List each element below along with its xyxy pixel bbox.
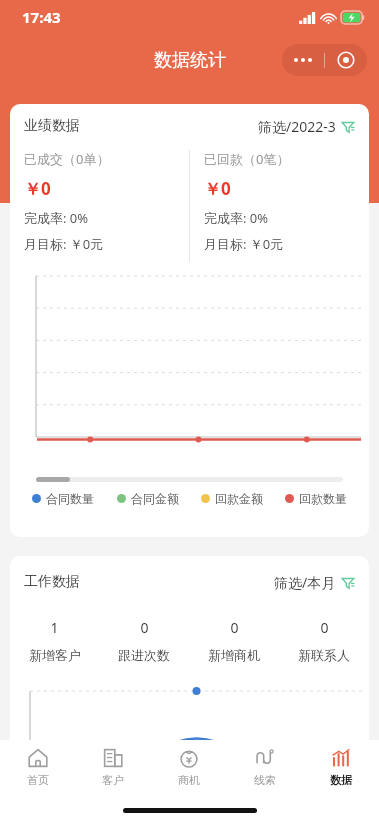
button[interactable]: 0	[99, 618, 189, 663]
staticText: ￥0	[204, 177, 231, 200]
button[interactable]: 1	[10, 618, 99, 663]
staticText: 筛选/2022-3	[258, 117, 336, 136]
staticText: ￥0	[24, 177, 51, 200]
staticText: 月目标: ￥0元	[204, 235, 284, 253]
staticText: 新联系人	[298, 647, 350, 663]
button[interactable]: 0	[189, 618, 279, 663]
staticText: 17:43	[22, 7, 61, 27]
staticText: 回款金额	[215, 491, 263, 506]
button[interactable]: 业绩数据	[10, 104, 369, 537]
staticText: 0	[230, 618, 239, 637]
staticText: 完成率: 0%	[204, 209, 269, 227]
staticText: 回款数量	[299, 491, 347, 506]
staticText: 已成交（0单）	[24, 150, 110, 168]
staticText: 0	[140, 618, 149, 637]
staticText: 线索	[254, 773, 276, 787]
staticText: 数据	[330, 773, 352, 787]
button[interactable]: 线索	[227, 740, 303, 794]
staticText: 完成率: 0%	[24, 209, 89, 227]
staticText: 跟进次数	[118, 647, 170, 663]
button[interactable]: Close	[325, 44, 367, 76]
staticText: 合同金额	[131, 491, 179, 506]
staticText: 已回款（0笔）	[204, 150, 290, 168]
staticText: 首页	[27, 773, 49, 787]
button[interactable]: 首页	[0, 740, 75, 794]
staticText: 0	[320, 618, 329, 637]
button[interactable]: 商机	[151, 740, 227, 794]
button[interactable]: 筛选/本月	[274, 573, 355, 592]
button[interactable]: 客户	[75, 740, 151, 794]
staticText: 工作数据	[24, 573, 80, 591]
button[interactable]: More options	[282, 44, 324, 76]
staticText: 月目标: ￥0元	[24, 235, 104, 253]
button[interactable]: 筛选/2022-3	[258, 117, 355, 136]
button[interactable]: 工作数据	[10, 556, 369, 796]
staticText: 新增客户	[29, 647, 81, 663]
staticText: 1	[50, 618, 59, 637]
button[interactable]: 数据	[303, 740, 379, 794]
staticText: 商机	[178, 773, 200, 787]
button[interactable]: 0	[279, 618, 369, 663]
staticText: 合同数量	[46, 491, 94, 506]
staticText: 筛选/本月	[274, 573, 336, 592]
staticText: 业绩数据	[24, 117, 80, 135]
staticText: 数据统计	[154, 49, 226, 72]
staticText: 新增商机	[208, 647, 260, 663]
staticText: 客户	[102, 773, 124, 787]
